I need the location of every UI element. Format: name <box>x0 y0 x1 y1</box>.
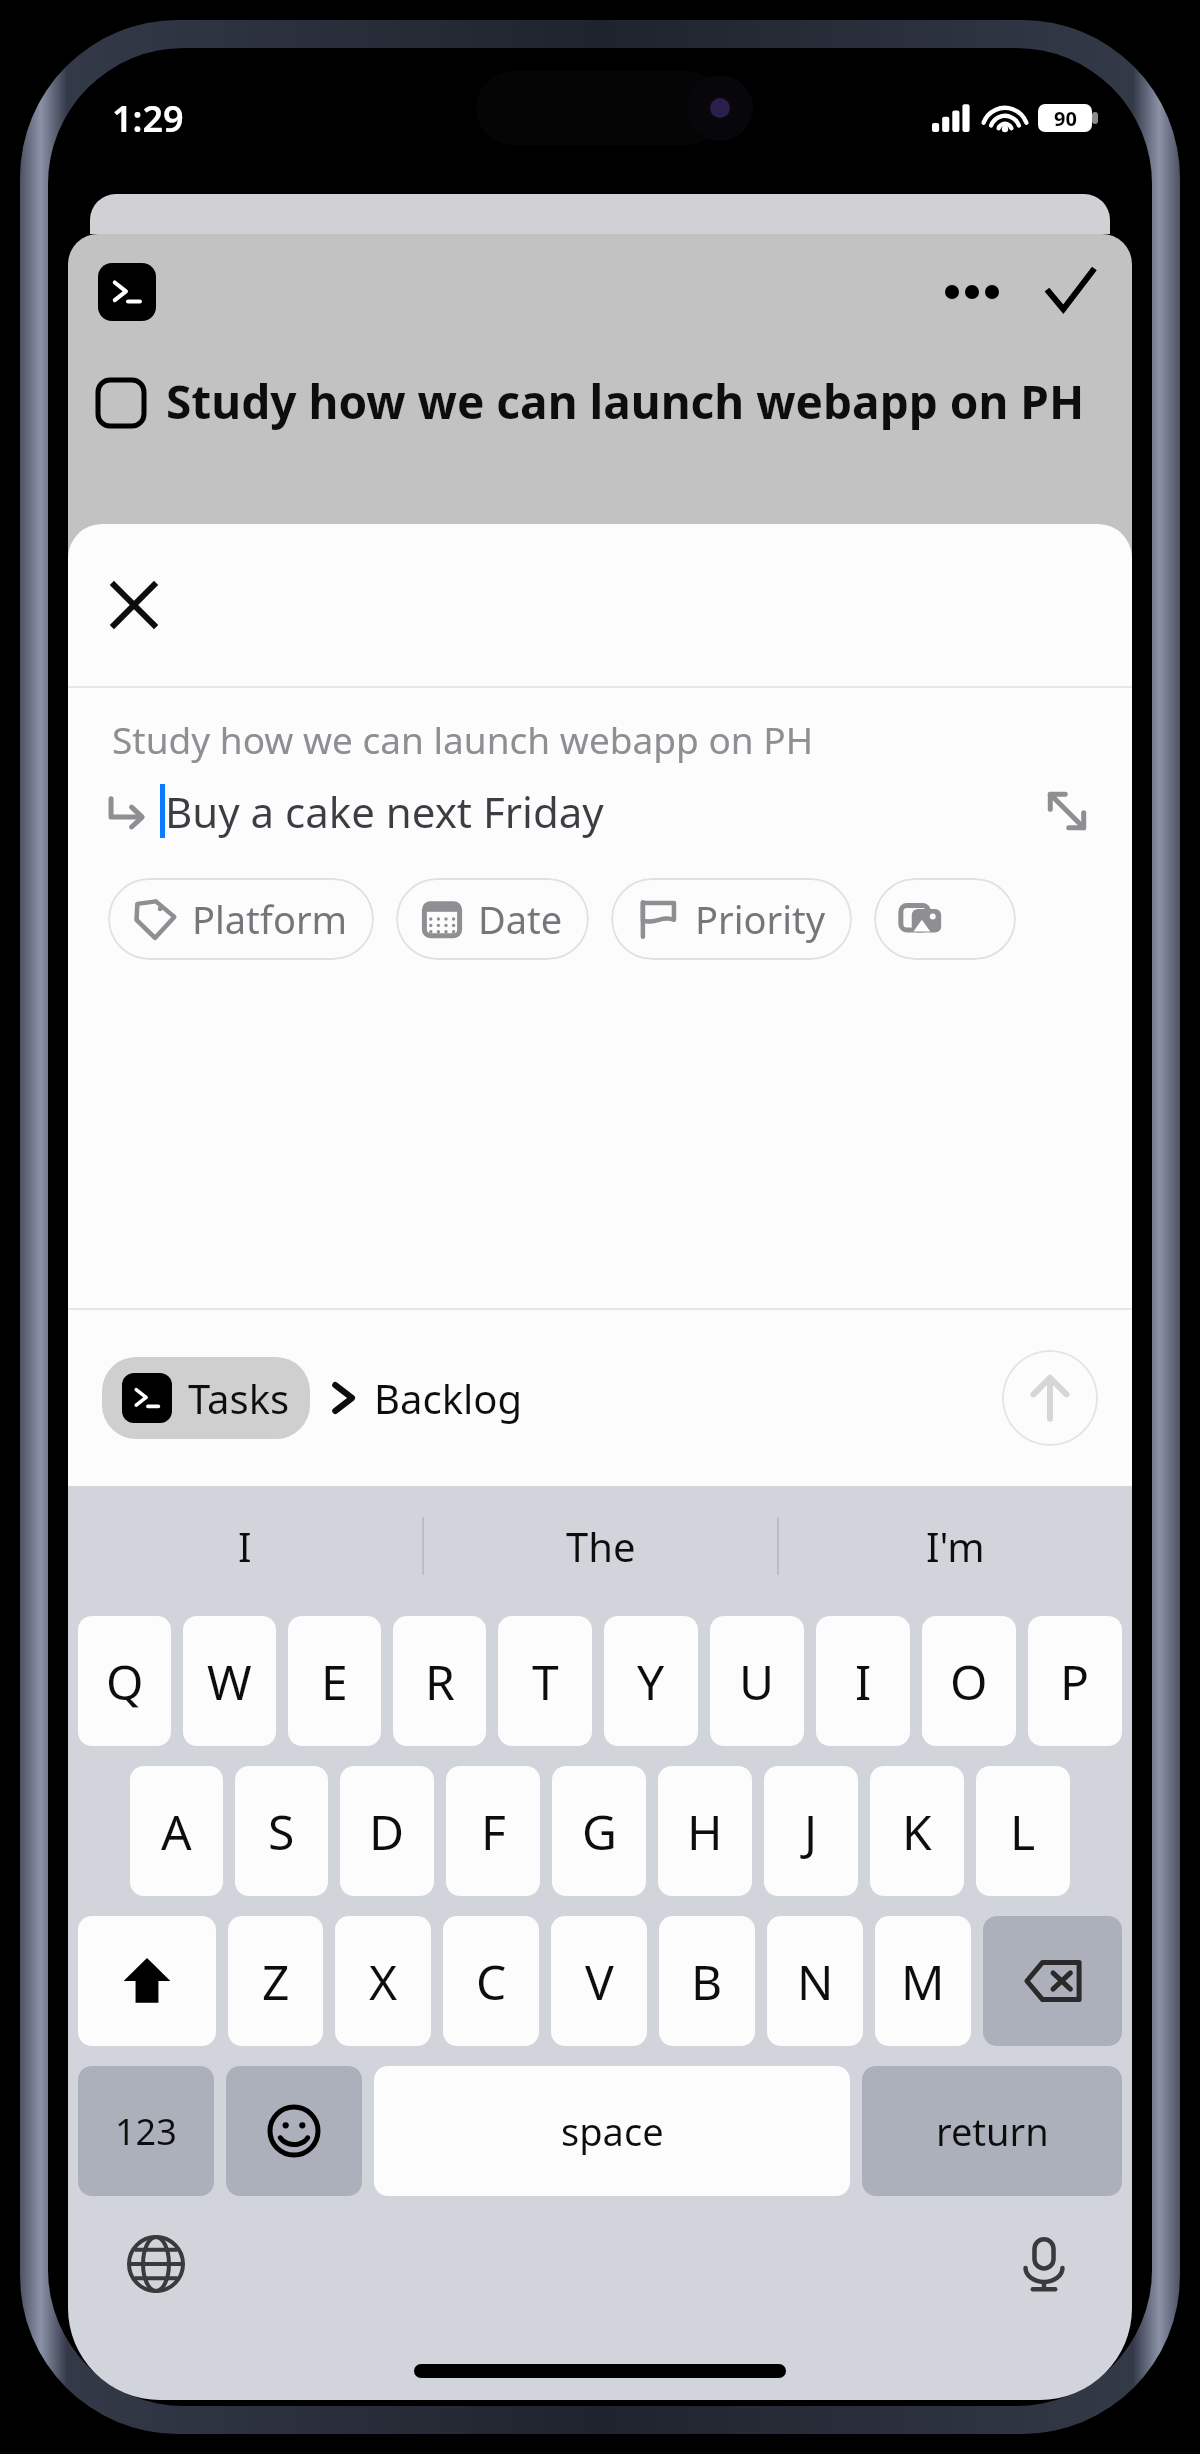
staticText: H <box>687 1799 723 1864</box>
button[interactable]: J <box>764 1766 858 1896</box>
button[interactable]: Expand <box>1036 780 1098 842</box>
staticText: Study how we can launch webapp on PH <box>166 370 1085 433</box>
staticText: W <box>207 1649 252 1714</box>
button[interactable]: I <box>816 1616 910 1746</box>
staticText: The <box>566 1519 636 1573</box>
button[interactable]: Shift <box>78 1916 216 2046</box>
button[interactable]: G <box>552 1766 646 1896</box>
staticText: G <box>582 1799 617 1864</box>
button[interactable]: Tasks <box>102 1357 310 1439</box>
staticText: F <box>481 1799 506 1864</box>
button[interactable]: M <box>875 1916 971 2046</box>
button[interactable]: O <box>922 1616 1016 1746</box>
staticText: T <box>532 1649 559 1714</box>
staticText: K <box>902 1799 932 1864</box>
staticText: Z <box>262 1949 290 2014</box>
button[interactable]: S <box>235 1766 328 1896</box>
button[interactable]: R <box>393 1616 486 1746</box>
button[interactable]: Z <box>228 1916 323 2046</box>
staticText: I <box>238 1519 252 1573</box>
button[interactable]: V <box>551 1916 647 2046</box>
button[interactable]: H <box>658 1766 752 1896</box>
button[interactable]: Dictate <box>1012 2232 1076 2296</box>
staticText: Study how we can launch webapp on PH <box>112 714 814 764</box>
staticText: 90 <box>1054 105 1077 132</box>
button[interactable]: D <box>340 1766 434 1896</box>
staticText: X <box>369 1949 398 2014</box>
button[interactable]: Change keyboard <box>124 2232 188 2296</box>
button[interactable]: 123 <box>78 2066 214 2196</box>
button[interactable]: More options <box>940 260 1004 324</box>
staticText: Platform <box>192 893 348 945</box>
button[interactable]: I <box>68 1486 422 1606</box>
button[interactable]: The <box>424 1486 777 1606</box>
button[interactable]: Q <box>78 1616 171 1746</box>
button[interactable]: Priority <box>611 878 852 960</box>
staticText: S <box>268 1799 295 1864</box>
button[interactable]: Tasks app <box>98 263 156 321</box>
staticText: Priority <box>695 893 826 945</box>
staticText: U <box>739 1649 775 1714</box>
button[interactable]: Backlog <box>374 1371 523 1425</box>
button[interactable]: Emoji <box>226 2066 362 2196</box>
button[interactable]: C <box>443 1916 539 2046</box>
button[interactable]: space <box>374 2066 850 2196</box>
button[interactable]: return <box>862 2066 1122 2196</box>
button[interactable]: Date <box>396 878 589 960</box>
staticText: I'm <box>926 1519 985 1573</box>
button[interactable]: U <box>710 1616 804 1746</box>
staticText: Buy a cake next Friday <box>165 783 604 840</box>
button[interactable]: E <box>288 1616 381 1746</box>
staticText: R <box>425 1649 455 1714</box>
button[interactable]: Close <box>98 569 170 641</box>
button[interactable]: K <box>870 1766 964 1896</box>
staticText: E <box>321 1649 348 1714</box>
button[interactable]: Send <box>1002 1350 1098 1446</box>
staticText: O <box>950 1649 988 1714</box>
button[interactable]: N <box>767 1916 863 2046</box>
staticText: space <box>561 2105 664 2157</box>
button[interactable]: T <box>498 1616 592 1746</box>
staticText: B <box>691 1949 723 2014</box>
staticText: A <box>161 1799 192 1864</box>
staticText: N <box>797 1949 834 2014</box>
button[interactable]: P <box>1028 1616 1122 1746</box>
staticText: Y <box>637 1649 665 1714</box>
button[interactable]: Backspace <box>983 1916 1122 2046</box>
staticText: M <box>901 1949 945 2014</box>
staticText: V <box>585 1949 614 2014</box>
staticText: 1:29 <box>112 94 184 143</box>
button[interactable]: B <box>659 1916 755 2046</box>
button[interactable]: F <box>446 1766 540 1896</box>
staticText: J <box>804 1799 818 1864</box>
button[interactable]: X <box>335 1916 431 2046</box>
button[interactable]: A <box>130 1766 223 1896</box>
staticText: 123 <box>115 2107 177 2156</box>
button[interactable]: Platform <box>108 878 374 960</box>
staticText: Tasks <box>188 1371 290 1425</box>
staticText: D <box>369 1799 405 1864</box>
staticText: C <box>476 1949 507 2014</box>
staticText: Date <box>478 893 563 945</box>
staticText: return <box>936 2105 1049 2157</box>
button[interactable]: L <box>976 1766 1070 1896</box>
staticText: Q <box>106 1649 144 1714</box>
button[interactable]: Y <box>604 1616 698 1746</box>
staticText: L <box>1010 1799 1036 1864</box>
button[interactable]: W <box>183 1616 276 1746</box>
staticText: P <box>1060 1649 1090 1714</box>
button[interactable] <box>874 878 1016 960</box>
button[interactable]: Done <box>1038 260 1102 324</box>
staticText: I <box>855 1649 872 1714</box>
button[interactable]: I'm <box>779 1486 1132 1606</box>
